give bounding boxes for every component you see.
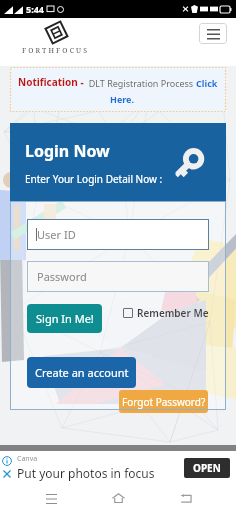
button[interactable]: OPEN [184, 458, 230, 478]
button[interactable]: Remember Me [123, 306, 209, 320]
staticText: Click [196, 77, 218, 89]
staticText: User ID [37, 227, 76, 242]
staticText: Put your photos in focus [17, 465, 155, 481]
staticText: Notification - [18, 75, 84, 89]
staticText: 5:44 [26, 3, 44, 15]
staticText: Login Now [25, 140, 110, 162]
staticText: Remember Me [137, 306, 209, 320]
button[interactable]: Back [169, 484, 203, 512]
button[interactable]: Create an account [27, 357, 136, 388]
button[interactable]: User ID [27, 219, 209, 250]
button[interactable]: Home [101, 484, 135, 512]
staticText: Password [37, 269, 87, 284]
button[interactable]: Password [27, 261, 209, 292]
staticText: Create an account [35, 365, 129, 380]
staticText: Sign In Me! [36, 311, 94, 326]
staticText: DLT Registration Process [84, 77, 196, 89]
staticText: Here. [110, 93, 135, 105]
staticText: Enter Your Login Detail Now : [25, 172, 163, 186]
staticText: Canva [17, 454, 38, 464]
staticText: OPEN [193, 461, 221, 475]
staticText: FORTHFOCUS [22, 46, 90, 56]
button[interactable]: Recents [34, 484, 68, 512]
button[interactable]: Menu [199, 23, 227, 44]
button[interactable]: Forgot Password? [119, 390, 208, 413]
button[interactable]: Sign In Me! [27, 304, 102, 333]
staticText: Forgot Password? [122, 395, 206, 409]
